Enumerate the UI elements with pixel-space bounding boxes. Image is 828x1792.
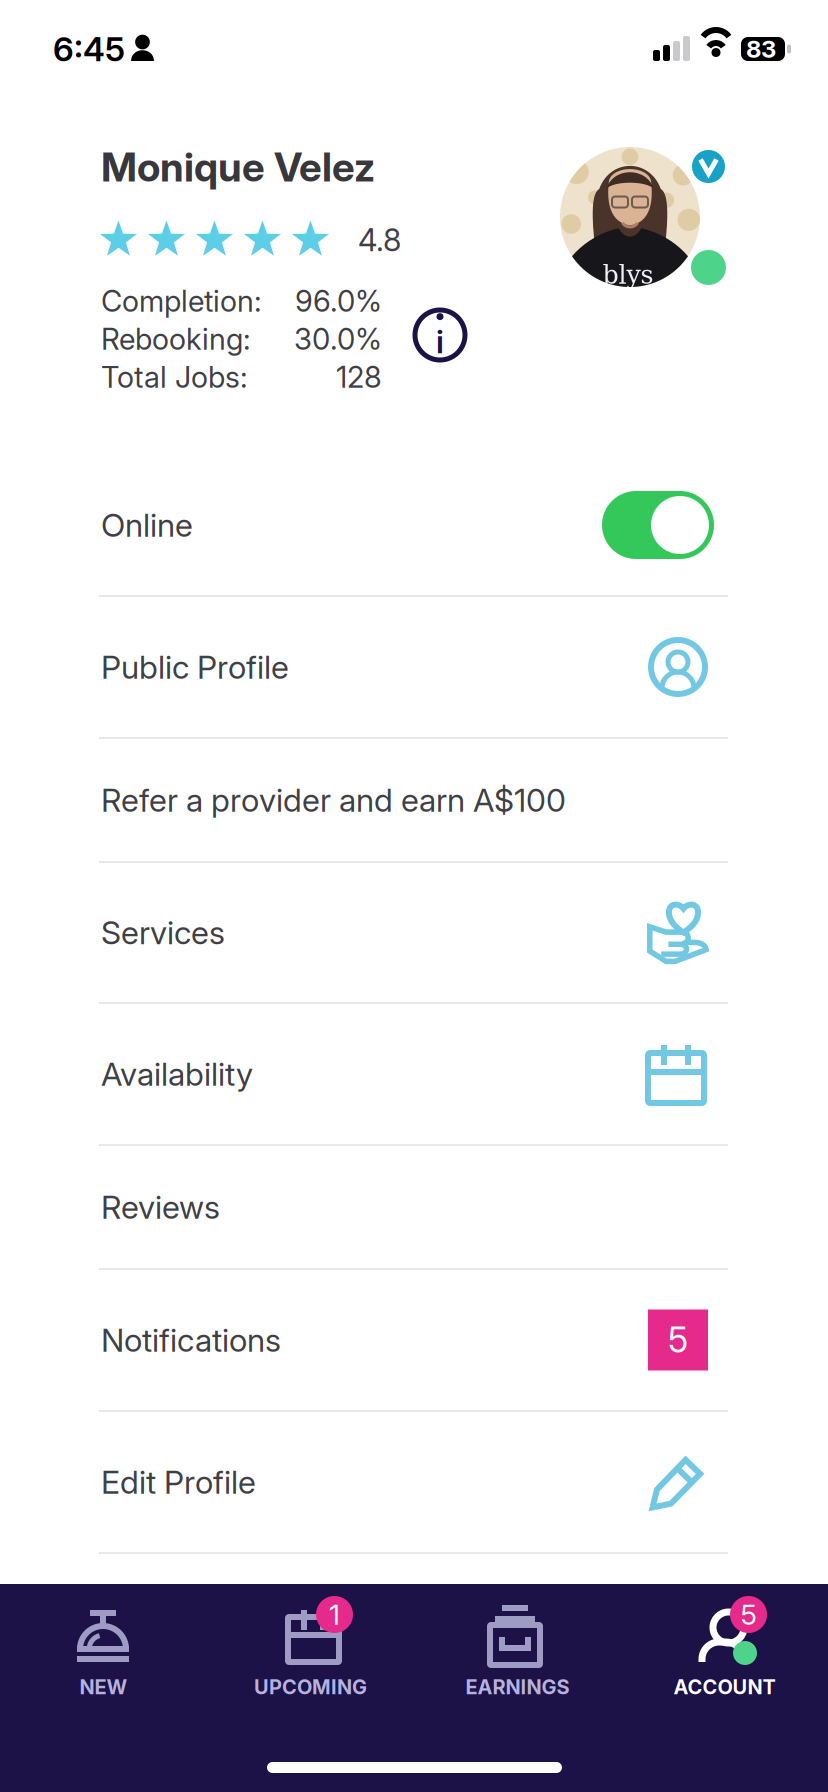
- staticText: Availability: [101, 1055, 253, 1093]
- staticText: Edit Profile: [101, 1463, 256, 1501]
- staticText: 30.0%: [294, 321, 382, 357]
- staticText: Monique Velez: [101, 143, 375, 191]
- button[interactable]: Online: [0, 455, 828, 597]
- staticText: Rebooking:: [101, 321, 251, 357]
- staticText: 128: [336, 359, 382, 395]
- button[interactable]: Availability: [0, 1004, 828, 1146]
- staticText: Total Jobs:: [101, 359, 248, 395]
- button[interactable]: Reviews: [0, 1146, 828, 1270]
- staticText: Refer a provider and earn A$100: [101, 781, 566, 819]
- staticText: 5: [668, 1319, 688, 1361]
- staticText: i: [436, 322, 444, 361]
- staticText: 1: [329, 1598, 340, 1631]
- button[interactable]: 5: [621, 1584, 828, 1792]
- button[interactable]: Stats info: [410, 305, 470, 365]
- staticText: UPCOMING: [254, 1675, 367, 1699]
- staticText: Notifications: [101, 1321, 281, 1359]
- staticText: Reviews: [101, 1188, 220, 1226]
- button[interactable]: Public Profile: [0, 597, 828, 739]
- staticText: Online: [101, 506, 193, 544]
- staticText: ACCOUNT: [673, 1675, 775, 1699]
- button[interactable]: 1: [207, 1584, 414, 1792]
- staticText: NEW: [79, 1675, 127, 1699]
- staticText: Services: [101, 913, 225, 952]
- staticText: Completion:: [101, 283, 262, 319]
- button[interactable]: Services: [0, 863, 828, 1004]
- button[interactable]: EARNINGS: [414, 1584, 621, 1792]
- staticText: 96.0%: [295, 283, 382, 319]
- staticText: blys: [602, 260, 653, 290]
- staticText: Public Profile: [101, 648, 289, 686]
- staticText: 6:45: [53, 29, 125, 69]
- staticText: 5: [740, 1598, 756, 1631]
- button[interactable]: Notifications: [0, 1270, 828, 1412]
- staticText: 83: [746, 34, 776, 63]
- button[interactable]: Edit Profile: [0, 1412, 828, 1554]
- staticText: EARNINGS: [465, 1675, 569, 1699]
- button[interactable]: NEW: [0, 1584, 207, 1792]
- staticText: 4.8: [358, 221, 401, 258]
- button[interactable]: Refer a provider and earn A$100: [0, 739, 828, 863]
